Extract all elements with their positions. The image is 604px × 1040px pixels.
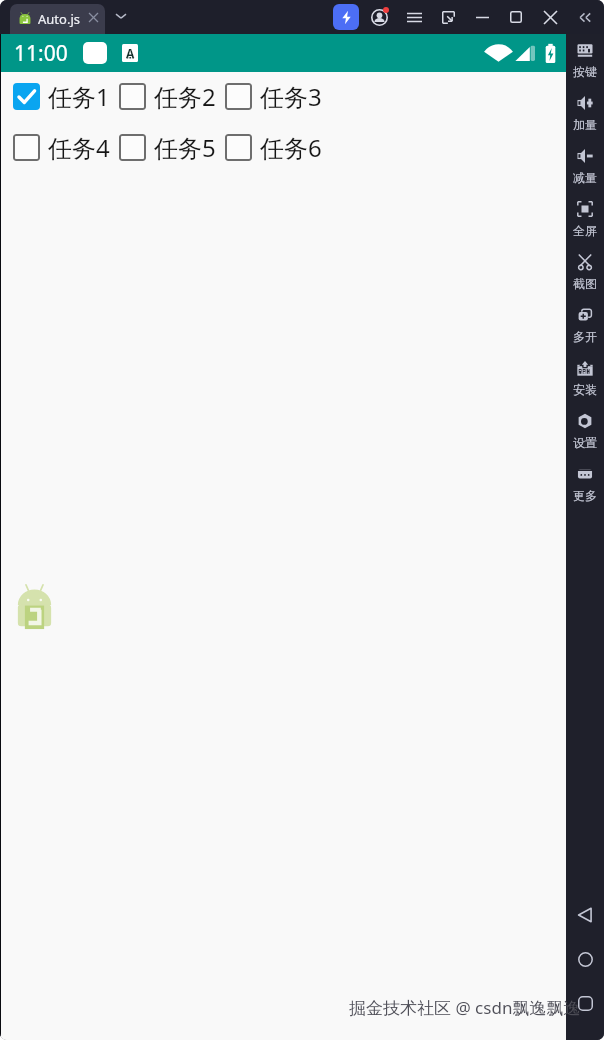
button[interactable]: Tab list: [111, 6, 131, 26]
button[interactable]: 任务2: [119, 80, 216, 113]
button[interactable]: 任务6: [225, 131, 322, 164]
button[interactable]: 减量: [566, 140, 604, 193]
button[interactable]: Close: [537, 4, 563, 30]
button[interactable]: 多开: [566, 299, 604, 352]
button[interactable]: Auto.js: [10, 4, 105, 34]
button[interactable]: Collapse: [571, 4, 597, 30]
button[interactable]: Home: [566, 944, 604, 974]
button[interactable]: 任务5: [119, 131, 216, 164]
button[interactable]: 设置: [566, 405, 604, 458]
staticText: 减量: [573, 170, 597, 185]
button[interactable]: Menu: [401, 4, 427, 30]
staticText: 设置: [573, 435, 597, 450]
staticText: 按键: [573, 64, 597, 79]
button[interactable]: Boost: [333, 4, 359, 30]
button[interactable]: 更多: [566, 458, 604, 511]
staticText: 掘金技术社区 @ csdn飘逸飘逸: [349, 996, 581, 1019]
button[interactable]: 全屏: [566, 193, 604, 246]
button[interactable]: 按键: [566, 34, 604, 87]
staticText: 多开: [573, 329, 597, 344]
staticText: 任务1: [48, 80, 110, 113]
staticText: 全屏: [573, 223, 597, 238]
staticText: 更多: [573, 488, 597, 503]
staticText: 截图: [573, 276, 597, 291]
button[interactable]: 截图: [566, 246, 604, 299]
button[interactable]: Maximize: [503, 4, 529, 30]
staticText: Auto.js: [38, 10, 80, 28]
button[interactable]: Account: [366, 4, 392, 30]
staticText: 任务5: [154, 131, 216, 164]
staticText: 任务4: [48, 131, 110, 164]
staticText: 任务3: [260, 80, 322, 113]
button[interactable]: Back: [566, 900, 604, 930]
button[interactable]: 任务3: [225, 80, 322, 113]
button[interactable]: 任务1: [13, 80, 110, 113]
staticText: 11:00: [14, 39, 68, 68]
button[interactable]: 任务4: [13, 131, 110, 164]
button[interactable]: 加量: [566, 87, 604, 140]
staticText: 任务6: [260, 131, 322, 164]
button[interactable]: Detach: [435, 4, 461, 30]
staticText: 任务2: [154, 80, 216, 113]
button[interactable]: Close tab: [84, 8, 102, 26]
button[interactable]: 安装: [566, 352, 604, 405]
staticText: A: [126, 45, 135, 61]
button[interactable]: Minimize: [469, 4, 495, 30]
staticText: 安装: [573, 382, 597, 397]
staticText: 加量: [573, 117, 597, 132]
button[interactable]: Recents: [566, 988, 604, 1018]
